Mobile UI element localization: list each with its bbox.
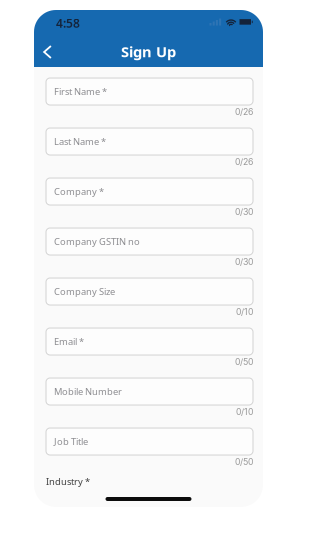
- button[interactable]: Mobile Number: [46, 378, 253, 405]
- staticText: Company Size: [54, 285, 115, 298]
- staticText: 0/10: [236, 306, 253, 317]
- staticText: 0/26: [235, 106, 253, 117]
- button[interactable]: First Name *: [46, 78, 253, 105]
- staticText: Company GSTIN no: [54, 235, 140, 248]
- button[interactable]: Email *: [46, 328, 253, 355]
- button[interactable]: Last Name *: [46, 128, 253, 155]
- staticText: Job Title: [54, 435, 88, 448]
- staticText: Company *: [54, 185, 104, 198]
- button[interactable]: Back: [34, 34, 61, 69]
- staticText: 0/50: [235, 356, 253, 367]
- button[interactable]: Company GSTIN no: [46, 228, 253, 255]
- button[interactable]: Company Size: [46, 278, 253, 305]
- staticText: Mobile Number: [54, 385, 122, 398]
- staticText: 4:58: [56, 15, 80, 31]
- button[interactable]: Company *: [46, 178, 253, 205]
- button[interactable]: Job Title: [46, 428, 253, 455]
- staticText: Email *: [54, 335, 84, 348]
- staticText: 0/26: [235, 156, 253, 167]
- staticText: 0/50: [235, 456, 253, 467]
- staticText: Industry *: [46, 475, 90, 488]
- staticText: Last Name *: [54, 135, 106, 148]
- staticText: 0/10: [236, 406, 253, 417]
- staticText: 0/30: [235, 256, 253, 267]
- staticText: Sign Up: [121, 42, 176, 61]
- staticText: 0/30: [235, 206, 253, 217]
- staticText: First Name *: [54, 85, 107, 98]
